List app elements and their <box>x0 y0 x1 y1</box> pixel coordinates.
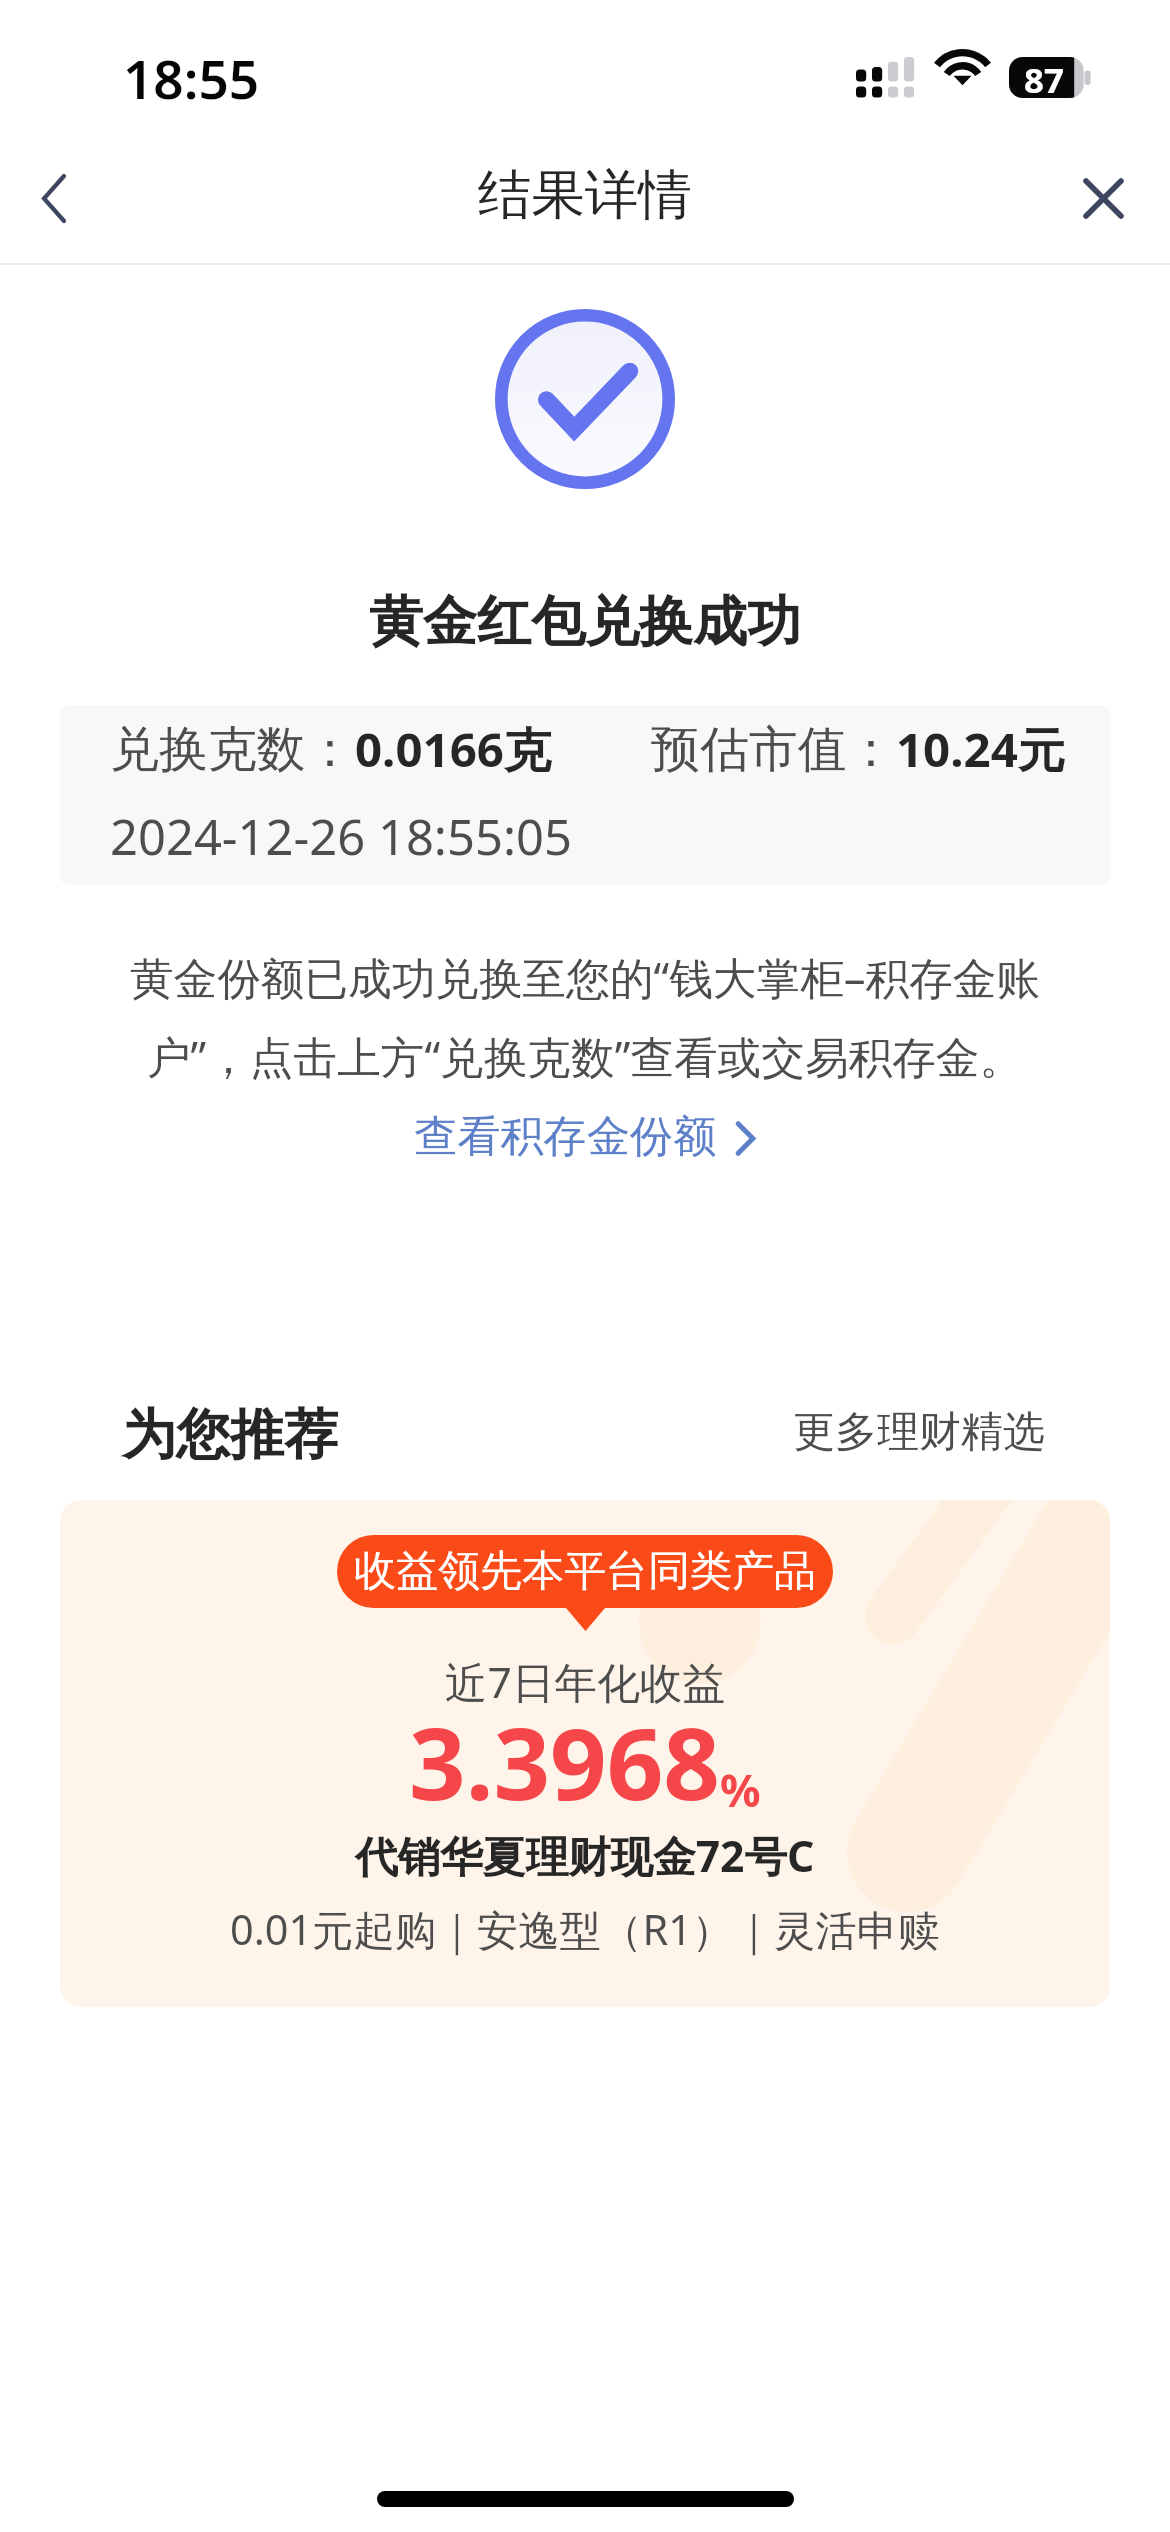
staticText: 2024-12-26 18:55:05 <box>110 803 572 870</box>
staticText: 0.0166克 <box>355 716 552 781</box>
button[interactable]: 更多理财精选 <box>787 1400 1051 1465</box>
button[interactable]: 兑换克数： <box>60 705 1110 885</box>
staticText: 0.01元起购｜安逸型（R1）｜灵活申赎 <box>230 1901 940 1958</box>
staticText: 黄金红包兑换成功 <box>369 588 801 656</box>
staticText: 3.3968 <box>409 1694 720 1829</box>
staticText: 代销华夏理财现金72号C <box>355 1826 815 1884</box>
staticText: 更多理财精选 <box>793 1406 1045 1459</box>
staticText: 87 <box>1024 56 1064 97</box>
staticText: 预估市值： <box>651 719 896 781</box>
button[interactable]: Back <box>0 144 108 252</box>
staticText: 为您推荐 <box>122 1401 338 1469</box>
button[interactable]: 查看积存金份额 <box>390 1100 780 1172</box>
staticText: 查看积存金份额 <box>414 1109 717 1163</box>
staticText: % <box>720 1759 761 1820</box>
staticText: 10.24元 <box>896 716 1066 781</box>
button[interactable]: Close <box>1049 144 1157 252</box>
staticText: 18:55 <box>123 42 260 114</box>
staticText: 兑换克数： <box>110 719 355 781</box>
staticText: 收益领先本平台同类产品 <box>354 1545 816 1598</box>
staticText: 黄金份额已成功兑换至您的“钱大掌柜–积存金账户”，点击上方“兑换克数”查看或交易… <box>123 947 1047 1086</box>
staticText: 结果详情 <box>478 162 692 229</box>
staticText: 近7日年化收益 <box>445 1652 725 1710</box>
button[interactable]: 收益领先本平台同类产品 <box>60 1500 1110 2007</box>
